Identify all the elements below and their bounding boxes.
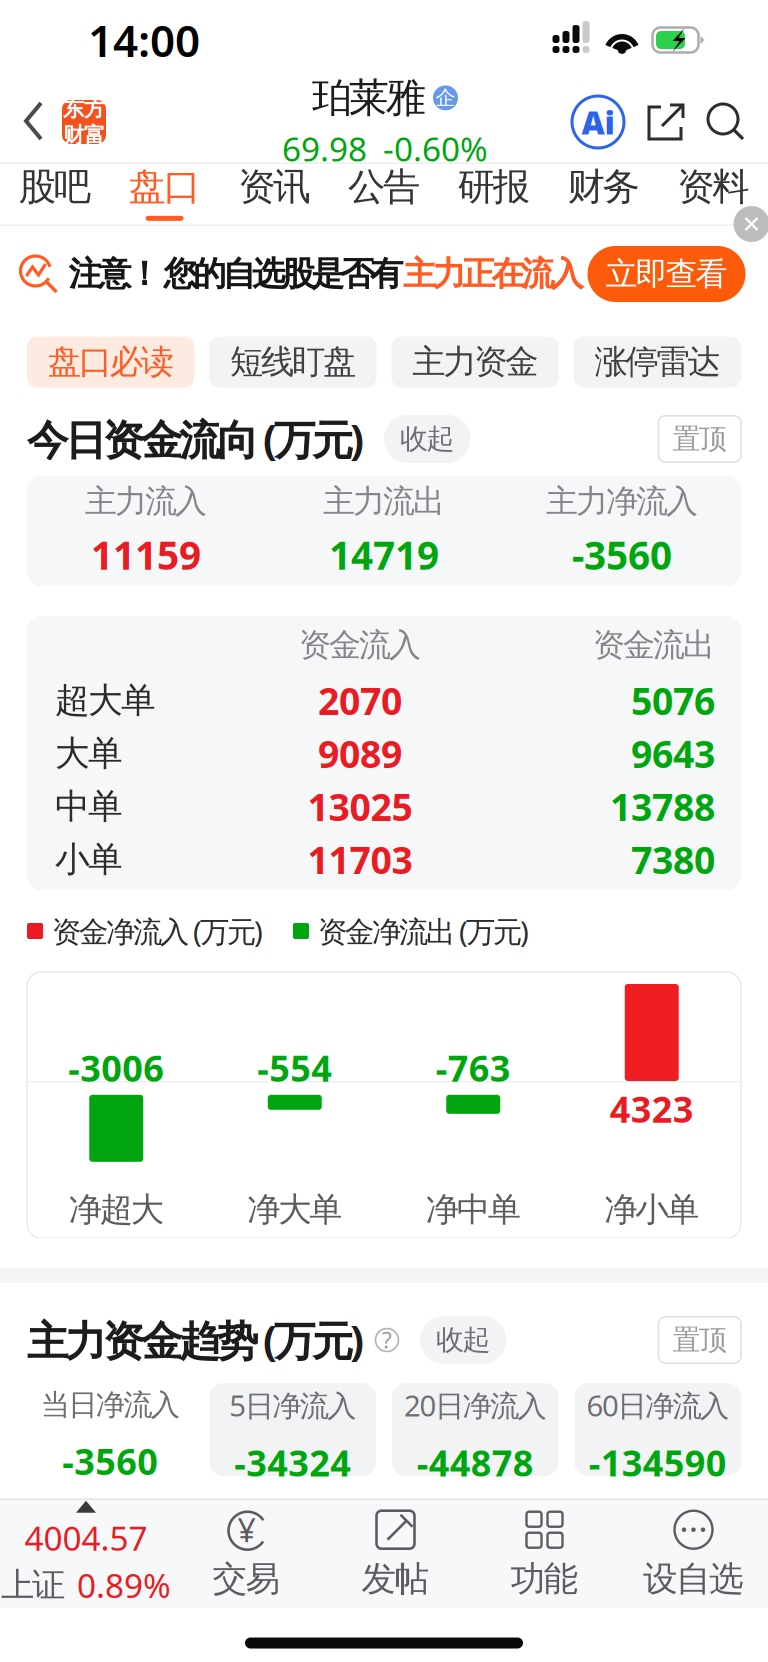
staticText: -3006 <box>68 1044 164 1092</box>
staticText: 14719 <box>329 529 439 580</box>
button[interactable]: 股吧 <box>0 164 110 226</box>
staticText: 小单 <box>55 838 123 881</box>
staticText: 9089 <box>318 729 402 778</box>
staticText: 4004.57 <box>24 1516 147 1560</box>
button[interactable]: 资料 <box>658 164 768 226</box>
staticText: 盘口 <box>129 164 201 210</box>
staticText: 涨停雷达 <box>594 341 720 382</box>
button[interactable]: 60日净流入 <box>574 1383 741 1476</box>
button[interactable]: 财务 <box>549 164 658 226</box>
button[interactable]: Share <box>624 102 706 142</box>
staticText: -34324 <box>234 1439 351 1486</box>
staticText: 净小单 <box>604 1189 699 1230</box>
button[interactable]: 收起 <box>420 1316 506 1364</box>
staticText: 主力净流入 <box>546 482 698 521</box>
staticText: 发帖 <box>361 1558 429 1600</box>
staticText: 5日净流入 <box>229 1386 356 1425</box>
button[interactable]: AI assistant <box>572 96 624 148</box>
button[interactable]: 4004.57 <box>0 1501 172 1607</box>
button[interactable]: 功能 <box>470 1508 619 1600</box>
staticText: 11703 <box>307 835 412 884</box>
staticText: -0.60% <box>383 126 488 171</box>
staticText: 公告 <box>348 164 420 210</box>
staticText: 上证 <box>1 1565 65 1606</box>
staticText: 60日净流入 <box>586 1386 729 1425</box>
button[interactable]: 置顶 <box>658 1317 741 1363</box>
staticText: -763 <box>436 1044 511 1092</box>
staticText: 资讯 <box>238 164 310 210</box>
staticText: -3560 <box>572 529 672 580</box>
staticText: 资金流入 <box>299 625 421 665</box>
button[interactable]: 盘口必读 <box>27 336 194 387</box>
button[interactable]: 设自选 <box>619 1508 768 1600</box>
staticText: 收起 <box>400 422 454 456</box>
button[interactable]: 盘口 <box>110 164 219 226</box>
staticText: 资金流出 <box>593 625 715 665</box>
staticText: 置顶 <box>672 422 727 456</box>
staticText: 20日净流入 <box>404 1386 546 1425</box>
staticText: 4323 <box>610 1085 694 1133</box>
staticText: 9643 <box>631 729 715 778</box>
staticText: 主力流入 <box>85 482 207 521</box>
staticText: 净中单 <box>426 1189 521 1230</box>
staticText: 资金净流入 (万元) <box>52 911 263 950</box>
button[interactable]: 当日净流入 <box>27 1383 193 1476</box>
button[interactable]: 置顶 <box>658 416 741 462</box>
staticText: 超大单 <box>55 679 156 722</box>
staticText: ? <box>382 1325 392 1355</box>
button[interactable]: Close <box>733 206 768 242</box>
button[interactable]: 公告 <box>329 164 439 226</box>
staticText: 主力资金 <box>412 341 538 382</box>
button[interactable]: East Money home <box>62 100 106 144</box>
staticText: 13025 <box>307 782 412 831</box>
staticText: 置顶 <box>672 1323 727 1357</box>
staticText: 设自选 <box>643 1558 744 1600</box>
staticText: 69.98 <box>282 126 367 171</box>
staticText: 股吧 <box>19 164 91 210</box>
staticText: 13788 <box>610 782 715 831</box>
button[interactable]: 资讯 <box>219 164 329 226</box>
staticText: ¥ <box>237 1508 255 1551</box>
staticText: 财务 <box>567 164 639 210</box>
staticText: 2070 <box>318 676 402 725</box>
staticText: 收起 <box>436 1323 490 1357</box>
staticText: 注意！ 您的自选股是否有 <box>68 253 403 294</box>
staticText: 0.89% <box>77 1563 171 1607</box>
staticText: 11159 <box>91 529 201 580</box>
staticText: 净超大 <box>69 1189 164 1230</box>
button[interactable]: Back <box>0 82 62 162</box>
button[interactable]: 短线盯盘 <box>209 336 376 387</box>
button[interactable]: 研报 <box>439 164 549 226</box>
staticText: 盘口必读 <box>48 341 174 382</box>
staticText: 资金净流出 (万元) <box>318 911 529 950</box>
staticText: -3560 <box>62 1437 158 1485</box>
staticText: 主力正在流入 <box>403 253 583 294</box>
staticText: 大单 <box>55 732 123 775</box>
staticText: 中单 <box>55 785 123 828</box>
button[interactable]: 20日净流入 <box>392 1383 558 1476</box>
staticText: -44878 <box>417 1439 534 1486</box>
staticText: 短线盯盘 <box>230 341 356 382</box>
button[interactable]: 发帖 <box>321 1508 470 1600</box>
staticText: 功能 <box>510 1558 578 1600</box>
button[interactable]: Search <box>706 102 768 142</box>
staticText: 东方 <box>63 96 105 122</box>
button[interactable]: 立即查看 <box>587 246 745 302</box>
staticText: 珀莱雅 <box>312 73 426 122</box>
button[interactable]: 涨停雷达 <box>574 336 741 387</box>
staticText: 主力资金趋势 (万元) <box>27 1313 364 1367</box>
button[interactable]: 主力资金 <box>391 336 559 387</box>
staticText: Ai <box>581 101 614 143</box>
button[interactable]: 5日净流入 <box>209 1383 376 1476</box>
staticText: 14:00 <box>88 11 200 69</box>
staticText: 7380 <box>631 835 715 884</box>
staticText: 交易 <box>212 1558 280 1600</box>
staticText: 5076 <box>631 676 715 725</box>
staticText: 研报 <box>458 164 530 210</box>
staticText: 净大单 <box>247 1189 342 1230</box>
staticText: -554 <box>257 1044 332 1092</box>
staticText: 今日资金流向 (万元) <box>27 412 364 466</box>
button[interactable]: ¥ <box>172 1508 321 1600</box>
button[interactable]: 收起 <box>384 415 470 463</box>
staticText: 财富 <box>63 122 105 148</box>
